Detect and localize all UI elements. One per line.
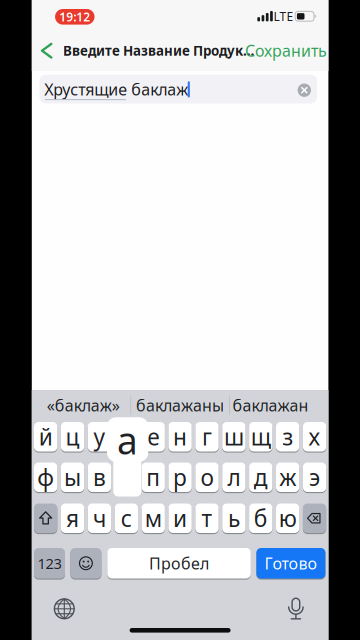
- staticText: х: [308, 422, 320, 452]
- button[interactable]: Очистить текст: [298, 83, 311, 97]
- staticText: т: [201, 503, 212, 533]
- button[interactable]: щ: [249, 421, 272, 452]
- button[interactable]: б: [249, 502, 272, 534]
- staticText: я: [66, 503, 79, 533]
- staticText: ы: [64, 462, 81, 492]
- button[interactable]: м: [142, 502, 165, 534]
- button[interactable]: о: [195, 461, 219, 493]
- staticText: ь: [228, 503, 240, 533]
- button[interactable]: ю: [276, 502, 299, 534]
- staticText: Готово: [264, 553, 317, 574]
- button[interactable]: ч: [88, 502, 111, 534]
- button[interactable]: з: [276, 421, 299, 452]
- button[interactable]: «баклаж»: [35, 390, 131, 420]
- staticText: н: [173, 422, 187, 452]
- button[interactable]: х: [303, 421, 326, 452]
- button[interactable]: п: [142, 461, 165, 493]
- button[interactable]: я: [61, 502, 84, 534]
- staticText: д: [254, 462, 268, 492]
- staticText: в: [93, 462, 106, 492]
- button[interactable]: с: [115, 502, 138, 534]
- staticText: ж: [279, 462, 296, 492]
- staticText: у: [93, 422, 105, 452]
- button[interactable]: т: [195, 502, 219, 534]
- button[interactable]: у: [88, 421, 111, 452]
- staticText: р: [173, 462, 187, 492]
- staticText: ч: [93, 503, 106, 533]
- staticText: щ: [251, 422, 271, 452]
- button[interactable]: в: [88, 461, 111, 493]
- button[interactable]: ш: [222, 421, 245, 452]
- staticText: 123: [37, 553, 61, 573]
- staticText: LTE: [273, 8, 293, 24]
- staticText: ф: [37, 462, 54, 492]
- staticText: к: [120, 422, 132, 452]
- button[interactable]: ж: [276, 461, 299, 493]
- button[interactable]: Название продукта: [40, 75, 317, 103]
- staticText: г: [202, 422, 212, 452]
- button[interactable]: к: [115, 421, 138, 452]
- button[interactable]: л: [222, 461, 245, 493]
- staticText: е: [147, 422, 159, 452]
- button[interactable]: ь: [222, 502, 245, 534]
- button[interactable]: и: [168, 502, 192, 534]
- button[interactable]: ы: [61, 461, 84, 493]
- staticText: ю: [279, 503, 297, 533]
- staticText: и: [173, 503, 187, 533]
- button[interactable]: Эмодзи: [70, 547, 101, 579]
- button[interactable]: Сменить клавиатуру: [32, 588, 96, 630]
- staticText: й: [39, 422, 53, 452]
- staticText: 19:12: [59, 9, 90, 25]
- staticText: баклажаны: [136, 395, 224, 416]
- button[interactable]: Shift: [34, 502, 57, 534]
- staticText: Пробел: [149, 553, 209, 574]
- button[interactable]: д: [249, 461, 272, 493]
- staticText: Введите Название Продук…: [63, 42, 254, 59]
- button[interactable]: баклажаны: [132, 390, 228, 420]
- staticText: э: [309, 462, 320, 492]
- staticText: баклажан: [233, 395, 309, 416]
- staticText: ш: [224, 422, 244, 452]
- staticText: ц: [65, 422, 79, 452]
- button[interactable]: ф: [34, 461, 57, 493]
- button[interactable]: баклажан: [223, 390, 319, 420]
- button[interactable]: н: [168, 421, 192, 452]
- staticText: з: [282, 422, 293, 452]
- staticText: п: [146, 462, 160, 492]
- staticText: «баклаж»: [47, 395, 120, 416]
- staticText: л: [227, 462, 240, 492]
- staticText: б: [254, 503, 268, 533]
- button[interactable]: Удалить: [303, 502, 326, 534]
- button[interactable]: й: [34, 421, 57, 452]
- staticText: с: [121, 503, 132, 533]
- staticText: о: [200, 462, 213, 492]
- button[interactable]: Пробел: [107, 547, 251, 579]
- button[interactable]: ц: [61, 421, 84, 452]
- staticText: а: [117, 415, 138, 465]
- staticText: Сохранить: [245, 40, 327, 61]
- button[interactable]: Цифры: [34, 547, 65, 579]
- button[interactable]: е: [142, 421, 165, 452]
- button[interactable]: Назад: [0, 0, 360, 640]
- button[interactable]: Сохранить: [236, 37, 336, 65]
- staticText: м: [145, 503, 162, 533]
- button[interactable]: Диктовка: [264, 590, 328, 632]
- staticText: Хрустящие баклаж: [44, 79, 188, 100]
- button[interactable]: г: [195, 421, 219, 452]
- button[interactable]: Готово: [256, 547, 325, 579]
- button[interactable]: э: [303, 461, 326, 493]
- button[interactable]: р: [168, 461, 192, 493]
